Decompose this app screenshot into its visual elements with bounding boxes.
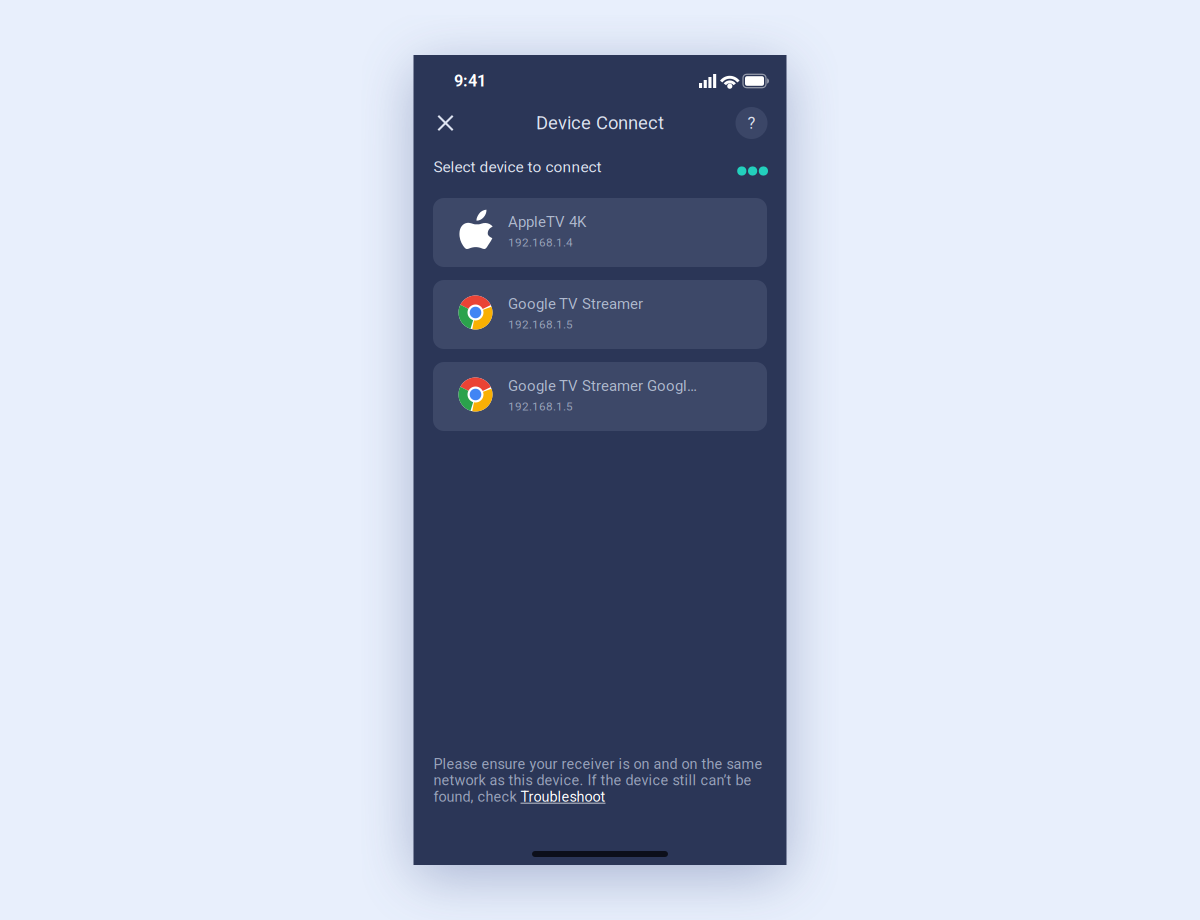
staticText: ? xyxy=(747,113,755,133)
staticText: Google TV Streamer xyxy=(508,295,643,313)
button[interactable]: Help xyxy=(734,106,768,140)
staticText: 9:41 xyxy=(454,71,486,91)
staticText: 192.168.1.5 xyxy=(508,318,573,331)
staticText: found, check xyxy=(433,788,520,805)
button[interactable]: Troubleshoot xyxy=(520,788,605,805)
button[interactable]: Google TV Streamer Googl… xyxy=(433,362,767,431)
staticText: network as this device. If the device st… xyxy=(433,772,751,789)
button[interactable]: Close xyxy=(429,107,461,139)
staticText: Google TV Streamer Googl… xyxy=(508,377,697,395)
button[interactable]: AppleTV 4K xyxy=(433,198,767,267)
staticText: AppleTV 4K xyxy=(508,213,586,231)
staticText: Please ensure your receiver is on and on… xyxy=(433,756,762,772)
staticText: 192.168.1.4 xyxy=(508,236,573,249)
staticText: Troubleshoot xyxy=(520,788,605,805)
button[interactable]: Google TV Streamer xyxy=(433,280,767,349)
staticText: Select device to connect xyxy=(433,158,601,176)
staticText: Device Connect xyxy=(536,112,664,134)
staticText: 192.168.1.5 xyxy=(508,400,573,413)
